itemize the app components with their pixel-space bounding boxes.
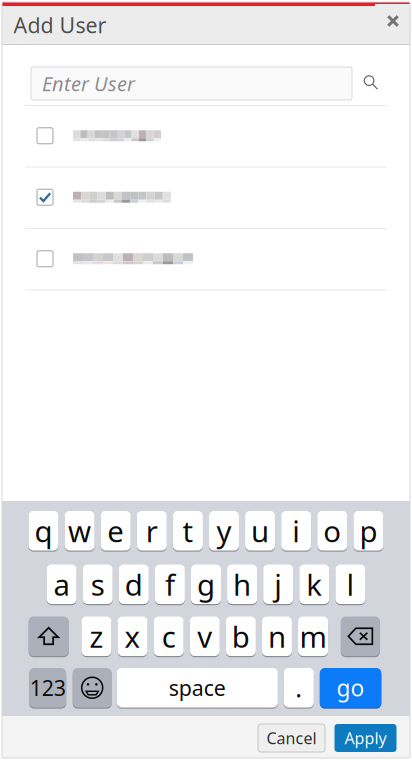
- staticText: c: [162, 617, 176, 656]
- button[interactable]: Search: [355, 68, 389, 98]
- button[interactable]: o: [317, 511, 347, 550]
- button[interactable]: w: [65, 511, 95, 550]
- staticText: k: [306, 565, 322, 604]
- button[interactable]: l: [335, 564, 365, 604]
- button[interactable]: s: [83, 564, 113, 604]
- staticText: Enter User: [42, 70, 135, 97]
- staticText: r: [146, 511, 158, 550]
- staticText: j: [274, 565, 282, 604]
- button[interactable]: m: [298, 616, 328, 656]
- staticText: g: [197, 565, 215, 604]
- button[interactable]: e: [101, 511, 131, 550]
- staticText: s: [91, 565, 105, 604]
- button[interactable]: g: [191, 564, 221, 604]
- button[interactable]: [0, 228, 412, 289]
- staticText: o: [323, 511, 341, 550]
- button[interactable]: Close: [375, 4, 411, 38]
- button[interactable]: i: [281, 511, 311, 550]
- button[interactable]: p: [353, 511, 383, 550]
- button[interactable]: y: [209, 511, 239, 550]
- staticText: z: [89, 617, 103, 656]
- staticText: u: [251, 511, 269, 550]
- button[interactable]: x: [118, 616, 148, 656]
- staticText: a: [54, 565, 70, 604]
- button[interactable]: f: [155, 564, 185, 604]
- button[interactable]: t: [173, 511, 203, 550]
- button[interactable]: a: [47, 564, 77, 604]
- button[interactable]: v: [190, 616, 220, 656]
- button[interactable]: d: [119, 564, 149, 604]
- staticText: b: [232, 617, 250, 656]
- staticText: Apply: [344, 727, 386, 749]
- button[interactable]: h: [227, 564, 257, 604]
- staticText: v: [197, 617, 212, 656]
- staticText: .: [295, 671, 302, 704]
- button[interactable]: z: [81, 616, 111, 656]
- button[interactable]: go: [320, 668, 381, 707]
- staticText: go: [337, 673, 365, 703]
- button[interactable]: Shift: [29, 616, 69, 656]
- button[interactable]: .: [284, 668, 314, 707]
- button[interactable]: c: [154, 616, 184, 656]
- staticText: 123: [30, 674, 66, 702]
- staticText: w: [68, 511, 91, 550]
- button[interactable]: Apply: [334, 724, 396, 752]
- staticText: e: [107, 511, 124, 550]
- button[interactable]: space: [117, 668, 278, 707]
- button[interactable]: Emoji keyboard: [73, 668, 112, 707]
- button[interactable]: Cancel: [258, 724, 325, 752]
- staticText: f: [165, 565, 175, 604]
- button[interactable]: b: [226, 616, 256, 656]
- button[interactable]: j: [263, 564, 293, 604]
- staticText: l: [346, 565, 354, 604]
- staticText: h: [233, 565, 251, 604]
- button[interactable]: q: [28, 511, 58, 550]
- button[interactable]: u: [245, 511, 275, 550]
- button[interactable]: Number keyboard: [29, 668, 66, 707]
- button[interactable]: k: [299, 564, 329, 604]
- staticText: Add User: [13, 11, 106, 39]
- staticText: m: [300, 617, 327, 656]
- button[interactable]: [0, 105, 412, 166]
- button[interactable]: Delete: [341, 616, 380, 656]
- staticText: q: [34, 511, 52, 550]
- staticText: Cancel: [266, 727, 316, 749]
- staticText: x: [125, 617, 141, 656]
- staticText: t: [182, 511, 193, 550]
- staticText: i: [292, 511, 300, 550]
- button[interactable]: [0, 166, 412, 228]
- staticText: y: [216, 511, 231, 550]
- staticText: space: [169, 674, 226, 702]
- staticText: p: [359, 511, 377, 550]
- button[interactable]: r: [137, 511, 167, 550]
- staticText: d: [125, 565, 143, 604]
- button[interactable]: n: [262, 616, 292, 656]
- staticText: n: [268, 617, 286, 656]
